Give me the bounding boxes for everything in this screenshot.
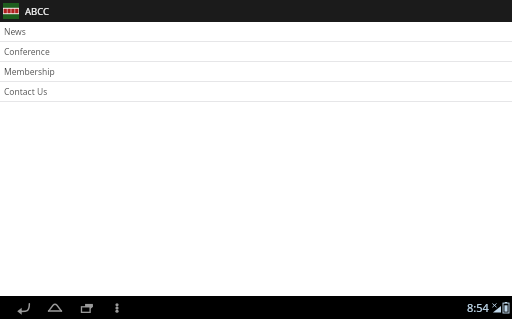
- staticText: Contact Us: [4, 86, 48, 98]
- staticText: 8:54: [467, 300, 489, 315]
- button[interactable]: Conference: [0, 42, 512, 62]
- staticText: Membership: [4, 66, 55, 78]
- button[interactable]: Contact Us: [0, 82, 512, 102]
- button[interactable]: Recent apps: [74, 296, 100, 319]
- button[interactable]: News: [0, 22, 512, 42]
- button[interactable]: More options: [106, 296, 128, 319]
- button[interactable]: Membership: [0, 62, 512, 82]
- button[interactable]: Home: [42, 296, 68, 319]
- button[interactable]: Back: [10, 296, 36, 319]
- staticText: Conference: [4, 46, 50, 58]
- staticText: ABCC: [25, 5, 50, 18]
- staticText: News: [4, 26, 26, 38]
